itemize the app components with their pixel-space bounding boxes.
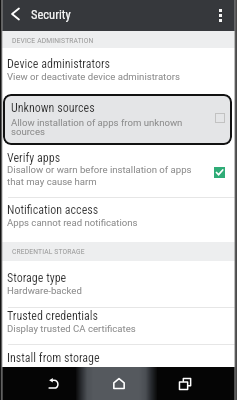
- staticText: sources: [11, 126, 45, 137]
- button[interactable]: [0, 48, 237, 94]
- staticText: View or deactivate device administrators: [7, 71, 180, 82]
- button[interactable]: Recents: [158, 367, 210, 400]
- staticText: Notification access: [7, 203, 99, 217]
- button[interactable]: Back: [27, 367, 79, 400]
- staticText: Unknown sources: [11, 101, 95, 115]
- button[interactable]: [0, 261, 237, 307]
- staticText: Trusted credentials: [7, 309, 99, 323]
- staticText: Install from storage: [7, 351, 100, 365]
- staticText: Device administrators: [7, 57, 111, 71]
- staticText: Verify apps: [7, 151, 61, 165]
- staticText: Display trusted CA certificates: [7, 323, 136, 334]
- button[interactable]: Back: [0, 0, 30, 31]
- staticText: CREDENTIAL STORAGE: [12, 248, 85, 256]
- staticText: that may cause harm: [7, 176, 97, 187]
- button[interactable]: [0, 307, 237, 344]
- staticText: Disallow or warn before installation of …: [7, 164, 192, 175]
- button[interactable]: [0, 197, 237, 242]
- staticText: DEVICE ADMINISTRATION: [12, 37, 94, 45]
- button[interactable]: [0, 142, 237, 197]
- button[interactable]: More options: [204, 0, 237, 31]
- button[interactable]: Home: [92, 367, 145, 400]
- button[interactable]: [0, 344, 237, 367]
- staticText: Storage type: [7, 271, 67, 285]
- button[interactable]: Unknown sources: [3, 94, 232, 145]
- staticText: Hardware-backed: [7, 285, 82, 296]
- staticText: Security: [31, 7, 71, 22]
- staticText: Allow installation of apps from unknown: [11, 117, 183, 128]
- staticText: Apps cannot read notifications: [7, 217, 138, 228]
